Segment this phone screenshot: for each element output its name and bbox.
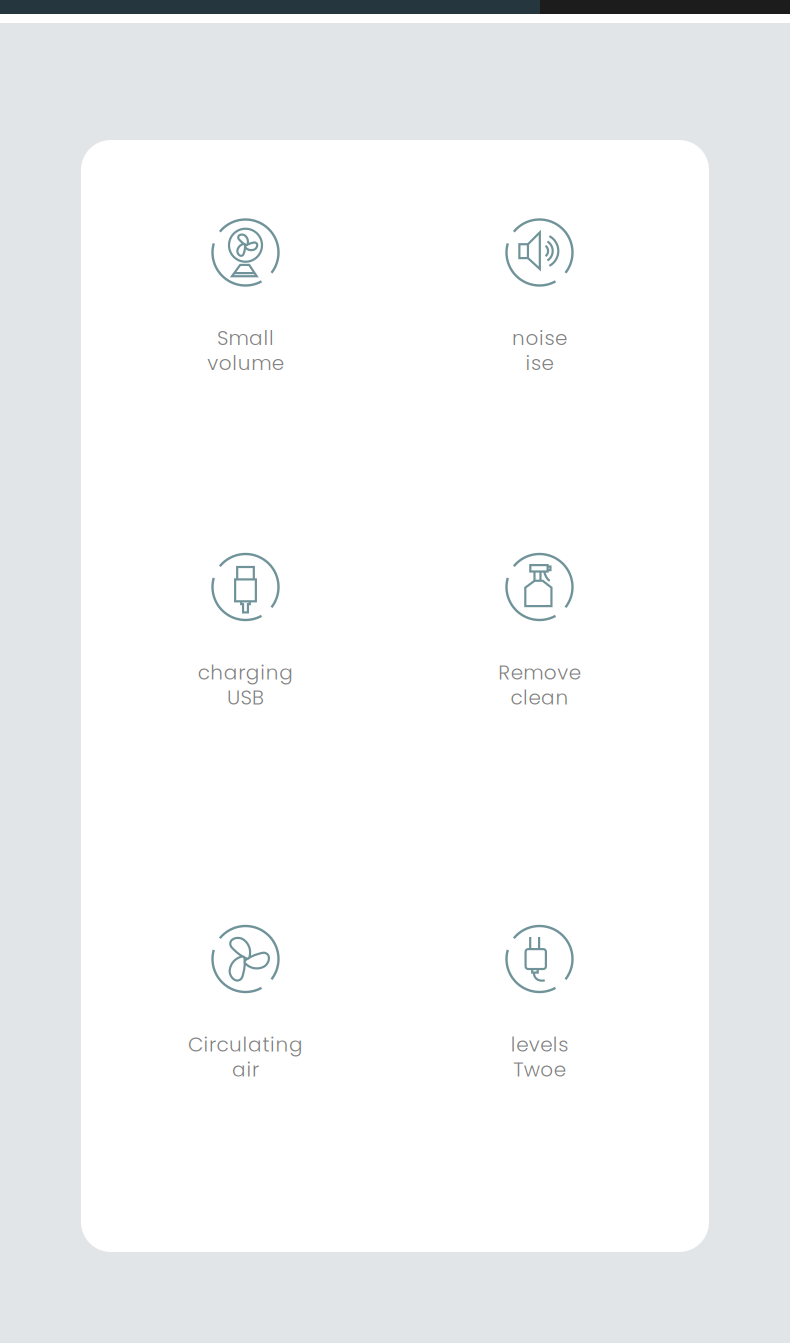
button[interactable]: charging <box>98 554 392 710</box>
staticText: volume <box>207 349 284 377</box>
staticText: clean <box>510 683 568 711</box>
staticText: Twoe <box>513 1055 566 1083</box>
staticText: Small <box>217 324 274 352</box>
button[interactable]: Small <box>98 219 392 375</box>
staticText: charging <box>198 658 293 686</box>
staticText: air <box>232 1055 259 1083</box>
staticText: USB <box>227 683 264 711</box>
staticText: Remove <box>498 658 581 686</box>
staticText: levels <box>511 1030 568 1058</box>
staticText: ise <box>525 349 553 377</box>
staticText: Circulating <box>188 1030 303 1058</box>
button[interactable]: Remove <box>392 554 686 710</box>
button[interactable]: levels <box>392 926 686 1082</box>
button[interactable]: noise <box>392 219 686 375</box>
button[interactable]: Circulating <box>98 926 392 1082</box>
staticText: noise <box>512 324 567 352</box>
